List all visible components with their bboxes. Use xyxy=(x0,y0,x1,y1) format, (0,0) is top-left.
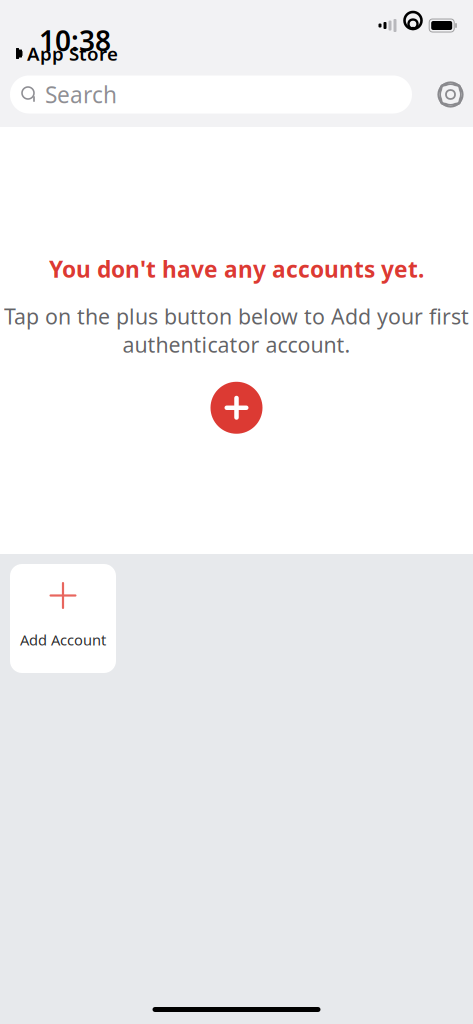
button[interactable]: App Store xyxy=(0,5,118,66)
button[interactable]: Add account xyxy=(210,382,262,434)
button[interactable]: Search xyxy=(10,75,412,113)
staticText: You don't have any accounts yet. xyxy=(49,254,424,284)
staticText: Search xyxy=(45,79,117,109)
staticText: Add Account xyxy=(20,630,106,649)
staticText: App Store xyxy=(27,41,118,66)
staticText: Tap on the plus button below to Add your… xyxy=(4,302,469,330)
button[interactable]: Add Account xyxy=(10,564,116,673)
button[interactable]: Settings xyxy=(428,72,473,116)
staticText: 10:38 xyxy=(39,22,111,59)
staticText: authenticator account. xyxy=(122,330,350,359)
